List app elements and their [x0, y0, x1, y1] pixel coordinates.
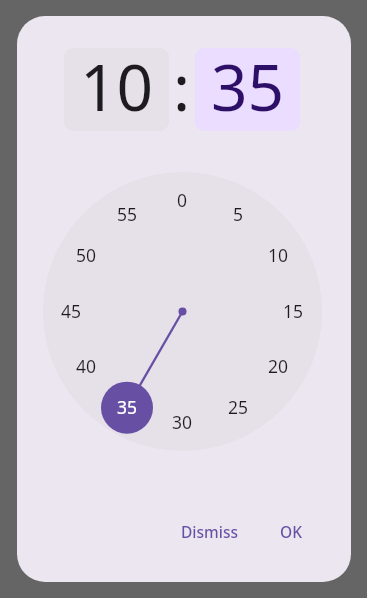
staticText: 35	[117, 395, 138, 419]
staticText: Dismiss	[181, 521, 238, 542]
staticText: 35	[211, 48, 285, 126]
staticText: 50	[76, 243, 97, 267]
staticText: 55	[117, 202, 138, 226]
button[interactable]	[43, 172, 322, 451]
staticText: 0	[177, 188, 188, 212]
staticText: 10	[268, 243, 289, 267]
staticText: :	[173, 43, 191, 126]
staticText: 10	[80, 48, 154, 126]
staticText: OK	[280, 521, 302, 542]
staticText: 15	[283, 299, 304, 323]
button[interactable]: 10	[64, 48, 169, 131]
staticText: 20	[268, 354, 289, 378]
button[interactable]: 35	[195, 48, 300, 131]
staticText: 30	[172, 410, 193, 434]
staticText: 45	[61, 299, 82, 323]
button[interactable]: OK	[263, 511, 319, 551]
staticText: 40	[76, 354, 97, 378]
staticText: 25	[228, 395, 249, 419]
button[interactable]: Dismiss	[165, 511, 253, 551]
staticText: 5	[233, 202, 244, 226]
